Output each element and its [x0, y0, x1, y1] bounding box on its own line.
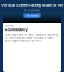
staticText: Vertical Screen Faceby Make of Ne [1, 3, 63, 8]
staticText: Accessibility [5, 27, 28, 32]
button[interactable]: Get started [23, 13, 41, 18]
staticText: Get started [25, 14, 38, 17]
staticText: FEATURED [5, 24, 15, 27]
staticText: in a photo [24, 8, 40, 12]
staticText: Lorem ipsum dolor sit amet, consectetur … [5, 33, 58, 42]
